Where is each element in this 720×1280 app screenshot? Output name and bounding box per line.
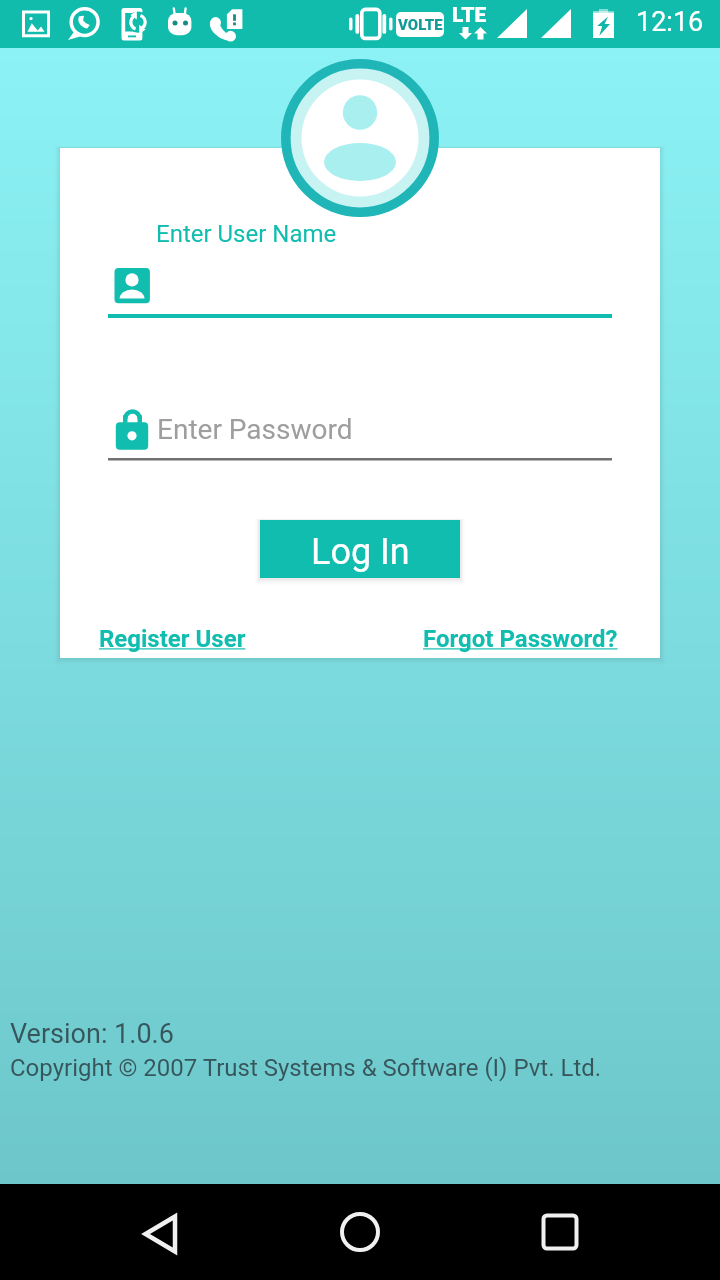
button[interactable]: Recent apps [520,1184,600,1280]
staticText: Register User [99,625,246,653]
button[interactable]: Home [320,1184,400,1280]
staticText: Copyright © 2007 Trust Systems & Softwar… [10,1054,602,1082]
button[interactable]: Register User [99,625,246,653]
staticText: Enter Password [157,413,353,446]
staticText: VOLTE [398,16,443,34]
staticText: Version: 1.0.6 [10,1018,174,1050]
button[interactable]: User name input [108,264,618,322]
button[interactable]: Log In [260,520,460,578]
staticText: 12:16 [636,6,704,38]
staticText: Enter User Name [156,220,337,248]
button[interactable]: Enter Password [108,404,618,462]
button[interactable]: Forgot Password? [423,625,618,653]
staticText: Log In [311,531,410,573]
button[interactable]: Back [120,1184,200,1280]
staticText: LTE [452,3,487,28]
staticText: Forgot Password? [423,625,618,653]
